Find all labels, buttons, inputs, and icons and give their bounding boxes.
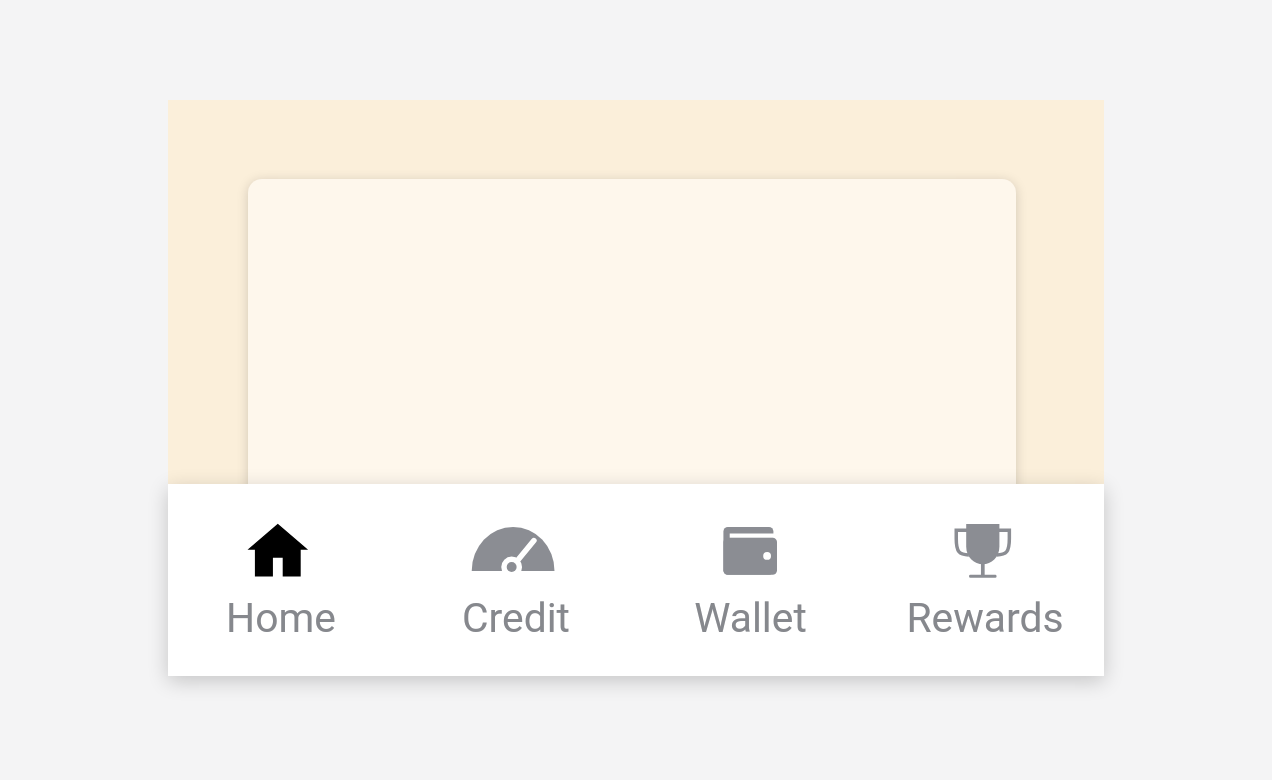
staticText: Wallet (694, 594, 807, 642)
button[interactable]: Rewards (868, 484, 1102, 676)
staticText: Home (226, 594, 336, 642)
staticText: Rewards (906, 594, 1064, 642)
button[interactable]: Credit (399, 484, 633, 676)
staticText: Credit (462, 594, 570, 642)
button[interactable]: Home (164, 484, 398, 676)
button[interactable]: Wallet (633, 484, 867, 676)
